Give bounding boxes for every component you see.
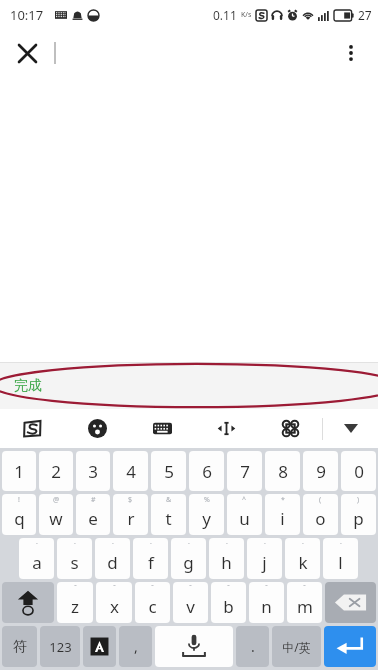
staticText: & bbox=[166, 495, 172, 505]
staticText: k bbox=[298, 551, 308, 574]
staticText: * bbox=[281, 495, 285, 505]
button[interactable]: Keyboard layout bbox=[130, 409, 194, 448]
staticText: ˇ bbox=[74, 583, 77, 593]
button[interactable]: 2 bbox=[39, 451, 73, 491]
button[interactable]: & bbox=[151, 494, 186, 535]
staticText: ˇ bbox=[265, 583, 268, 593]
button[interactable]: ˇ bbox=[249, 582, 284, 623]
staticText: b bbox=[223, 595, 234, 618]
staticText: 中/英 bbox=[282, 639, 311, 655]
button[interactable]: Close bbox=[8, 34, 46, 72]
button[interactable]: Language bbox=[83, 626, 116, 667]
staticText: p bbox=[353, 507, 364, 530]
staticText: 3 bbox=[88, 460, 98, 483]
button[interactable]: More options bbox=[332, 34, 370, 72]
button[interactable]: ˇ bbox=[57, 582, 93, 623]
button[interactable]: 中/英 bbox=[272, 626, 321, 667]
staticText: r bbox=[127, 507, 135, 530]
button[interactable]: 6 bbox=[189, 451, 224, 491]
button[interactable]: · bbox=[133, 538, 168, 579]
button[interactable]: ) bbox=[341, 494, 376, 535]
button[interactable]: ˇ bbox=[135, 582, 170, 623]
staticText: · bbox=[226, 539, 228, 549]
staticText: 6 bbox=[202, 460, 212, 483]
staticText: ˇ bbox=[113, 583, 116, 593]
button[interactable]: . bbox=[236, 626, 269, 667]
button[interactable]: Shift bbox=[2, 582, 54, 623]
button[interactable]: Space bbox=[155, 626, 233, 667]
staticText: c bbox=[148, 595, 157, 618]
staticText: v bbox=[186, 595, 195, 618]
button[interactable]: 符 bbox=[2, 626, 37, 667]
button[interactable]: · bbox=[247, 538, 282, 579]
staticText: · bbox=[302, 539, 304, 549]
staticText: · bbox=[150, 539, 152, 549]
staticText: e bbox=[88, 507, 98, 530]
button[interactable]: $ bbox=[113, 494, 148, 535]
button[interactable]: 完成 bbox=[0, 362, 378, 409]
button[interactable]: @ bbox=[39, 494, 73, 535]
button[interactable]: ˇ bbox=[287, 582, 322, 623]
button[interactable]: # bbox=[76, 494, 110, 535]
button[interactable]: · bbox=[19, 538, 54, 579]
staticText: 符 bbox=[13, 638, 27, 656]
button[interactable]: ˇ bbox=[173, 582, 208, 623]
staticText: y bbox=[202, 507, 211, 530]
staticText: a bbox=[32, 551, 42, 574]
staticText: q bbox=[14, 507, 25, 530]
staticText: 8 bbox=[278, 460, 288, 483]
staticText: 0 bbox=[354, 460, 364, 483]
button[interactable]: % bbox=[189, 494, 224, 535]
staticText: f bbox=[148, 551, 154, 574]
staticText: m bbox=[297, 595, 313, 618]
button[interactable]: ( bbox=[303, 494, 338, 535]
button[interactable]: · bbox=[57, 538, 92, 579]
staticText: K/s bbox=[241, 10, 252, 20]
staticText: 2 bbox=[51, 460, 61, 483]
staticText: 5 bbox=[164, 460, 174, 483]
button[interactable]: 5 bbox=[151, 451, 186, 491]
button[interactable]: · bbox=[285, 538, 320, 579]
button[interactable]: Hide keyboard bbox=[323, 409, 378, 448]
staticText: s bbox=[70, 551, 79, 574]
button[interactable]: ˇ bbox=[96, 582, 132, 623]
button[interactable]: 0 bbox=[341, 451, 376, 491]
button[interactable]: 123 bbox=[40, 626, 80, 667]
button[interactable]: 9 bbox=[303, 451, 338, 491]
staticText: l bbox=[338, 551, 343, 574]
button[interactable]: · bbox=[95, 538, 130, 579]
button[interactable]: Shortcuts bbox=[258, 409, 322, 448]
staticText: x bbox=[110, 595, 119, 618]
button[interactable]: 7 bbox=[227, 451, 262, 491]
button[interactable]: · bbox=[209, 538, 244, 579]
button[interactable]: 3 bbox=[76, 451, 110, 491]
button[interactable]: Enter bbox=[324, 626, 376, 667]
button[interactable]: , bbox=[119, 626, 152, 667]
button[interactable]: 8 bbox=[265, 451, 300, 491]
staticText: 123 bbox=[49, 638, 72, 656]
staticText: i bbox=[280, 507, 285, 530]
button[interactable]: Move cursor bbox=[194, 409, 258, 448]
staticText: $ bbox=[128, 495, 133, 505]
button[interactable]: ! bbox=[2, 494, 36, 535]
button[interactable]: Emoji bbox=[65, 409, 130, 448]
staticText: · bbox=[188, 539, 190, 549]
button[interactable]: · bbox=[171, 538, 206, 579]
staticText: % bbox=[204, 495, 210, 505]
staticText: ˇ bbox=[227, 583, 230, 593]
staticText: ˇ bbox=[189, 583, 192, 593]
button[interactable]: Backspace bbox=[325, 582, 376, 623]
staticText: w bbox=[49, 507, 63, 530]
button[interactable]: · bbox=[323, 538, 358, 579]
staticText: z bbox=[71, 595, 79, 618]
button[interactable]: * bbox=[265, 494, 300, 535]
staticText: ^ bbox=[242, 495, 247, 505]
staticText: · bbox=[264, 539, 266, 549]
button[interactable]: Sogou input bbox=[0, 409, 65, 448]
button[interactable]: 4 bbox=[113, 451, 148, 491]
button[interactable]: ˇ bbox=[211, 582, 246, 623]
button[interactable]: ^ bbox=[227, 494, 262, 535]
button[interactable]: 1 bbox=[2, 451, 36, 491]
staticText: · bbox=[74, 539, 76, 549]
staticText: @ bbox=[53, 495, 60, 505]
